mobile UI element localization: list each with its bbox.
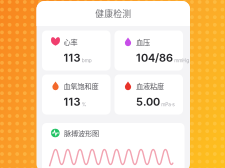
button[interactable]: 血液粘度 [114,74,183,114]
staticText: mmHg [174,58,189,63]
staticText: 5.00 [136,95,160,108]
staticText: 血氧饱和度 [64,81,99,91]
button[interactable]: 血氧饱和度 [42,74,110,114]
staticText: % [82,102,87,107]
staticText: 血液粘度 [136,81,164,91]
staticText: mPa·s [161,102,175,107]
staticText: 113 [64,95,81,108]
staticText: bmp [82,58,92,63]
staticText: 血压 [136,37,150,47]
button[interactable]: 心率 [42,30,110,70]
staticText: 113 [64,51,81,64]
button[interactable]: 血压 [114,30,183,70]
staticText: 104/86 [136,51,173,64]
staticText: 心率 [64,37,78,47]
staticText: 健康检测 [95,7,131,20]
staticText: 脉搏波形图 [64,128,99,138]
